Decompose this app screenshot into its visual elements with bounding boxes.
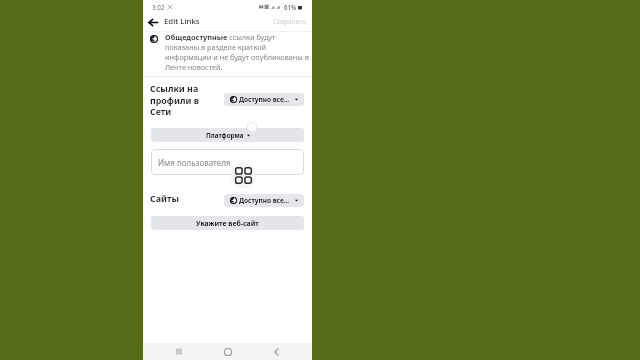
staticText: Укажите веб-сайт — [196, 219, 259, 228]
staticText: Ссылки на профили в Сети — [150, 83, 203, 117]
button[interactable]: Back — [264, 343, 288, 360]
staticText: Сайты — [150, 193, 179, 205]
button[interactable]: Имя пользователя — [151, 149, 304, 175]
staticText: 61% — [284, 3, 297, 11]
button[interactable]: Укажите веб-сайт — [151, 216, 304, 230]
staticText: Общедоступные ссылки будут показаны в ра… — [165, 32, 310, 72]
staticText: Сохранить — [273, 17, 306, 26]
staticText: Доступно все... — [239, 196, 290, 205]
staticText: Платформа — [206, 131, 244, 140]
button[interactable]: Recent apps — [167, 343, 191, 360]
staticText: 3:02 — [152, 3, 165, 11]
button[interactable]: Home — [216, 343, 240, 360]
button[interactable]: Доступно все... — [224, 194, 304, 207]
button[interactable]: Back — [146, 14, 160, 30]
button[interactable]: Платформа — [151, 128, 304, 142]
button[interactable]: Сохранить — [272, 15, 307, 28]
staticText: Доступно все... — [239, 95, 290, 104]
staticText: Edit Links — [164, 16, 200, 27]
button[interactable]: Доступно все... — [224, 93, 304, 106]
staticText: Имя пользователя — [158, 157, 231, 168]
